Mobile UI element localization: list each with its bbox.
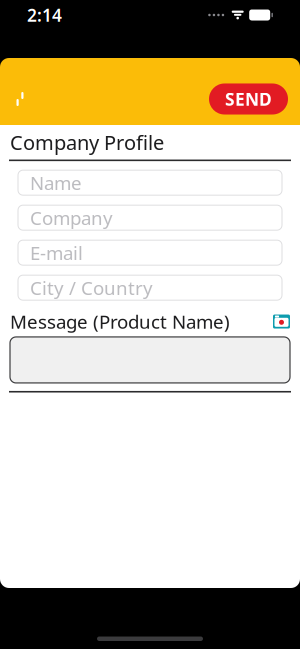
button[interactable]: Back <box>4 81 36 117</box>
staticText: Company <box>30 205 113 230</box>
staticText: 2:14 <box>27 3 62 26</box>
staticText: Message (Product Name) <box>10 309 230 334</box>
staticText: SEND <box>225 87 272 110</box>
staticText: City / Country <box>30 275 153 300</box>
button[interactable]: Attach photo <box>273 315 290 329</box>
button[interactable]: SEND <box>209 83 288 114</box>
staticText: Name <box>30 170 82 195</box>
staticText: Company Profile <box>10 129 164 156</box>
staticText: E-mail <box>30 240 83 265</box>
